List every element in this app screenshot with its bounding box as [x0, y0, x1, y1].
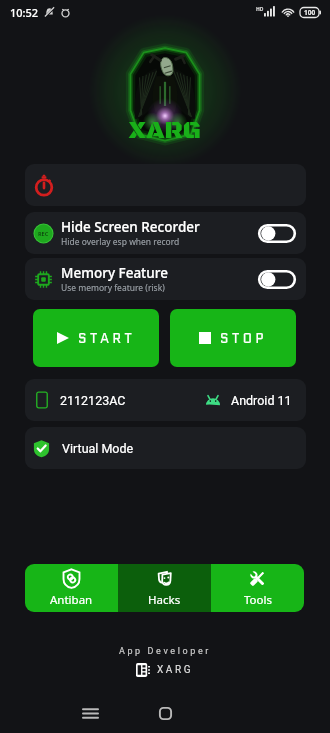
button[interactable]: Toggle — [258, 270, 296, 289]
staticText: Tools — [244, 592, 272, 608]
staticText: Virtual Mode — [62, 441, 134, 456]
staticText: App Developer — [119, 646, 211, 657]
button[interactable]: STOP — [170, 309, 296, 367]
staticText: REC — [38, 230, 49, 237]
button[interactable]: Memory Feature — [34, 258, 296, 300]
button[interactable]: Toggle — [258, 224, 296, 243]
staticText: 2112123AC — [60, 393, 126, 408]
staticText: Use memory feature (risk) — [61, 282, 165, 294]
staticText: Hide overlay esp when record — [61, 236, 180, 248]
staticText: Memory Feature — [61, 264, 168, 282]
button[interactable]: Recent apps — [74, 700, 107, 727]
button[interactable]: Hacks — [118, 564, 211, 612]
button[interactable]: Home — [149, 700, 181, 727]
staticText: START — [78, 329, 136, 348]
button[interactable]: REC — [34, 212, 296, 254]
button[interactable]: START — [33, 309, 159, 367]
staticText: XARG — [129, 115, 201, 146]
staticText: Android 11 — [231, 393, 292, 408]
button[interactable]: Antiban — [25, 564, 118, 612]
staticText: Antiban — [50, 592, 93, 608]
staticText: Hide Screen Recorder — [61, 218, 200, 236]
staticText: 100 — [304, 8, 316, 17]
button[interactable]: Tools — [211, 564, 304, 612]
staticText: XARG — [157, 664, 194, 676]
staticText: HD — [256, 6, 264, 13]
staticText: STOP — [220, 329, 268, 348]
button[interactable]: Virtual Mode — [32, 427, 297, 469]
staticText: 10:52 — [10, 5, 39, 20]
staticText: Hacks — [148, 592, 181, 608]
